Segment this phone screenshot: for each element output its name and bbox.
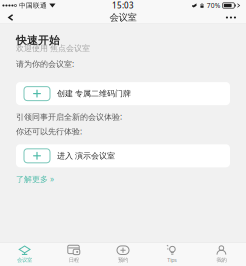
button[interactable]: 日程 (49, 243, 98, 266)
staticText: 你还可以先行体验: (16, 126, 82, 137)
staticText: 我的 (216, 257, 226, 263)
button[interactable]: Back (0, 11, 30, 24)
staticText: Tips (167, 256, 177, 264)
staticText: 中国联通 (19, 1, 47, 10)
staticText: 请为你的会议室: (16, 58, 74, 69)
staticText: 15:03 (112, 0, 134, 11)
staticText: 70% (207, 1, 221, 10)
staticText: 快速开始 (16, 34, 60, 47)
staticText: 进入 演示会议室 (57, 151, 115, 161)
staticText: 欢迎使用 焦点会议室 (16, 43, 90, 53)
button[interactable]: 预约 (98, 243, 148, 266)
staticText: 会议室 (17, 257, 32, 263)
button[interactable]: 创建 专属二维码门牌 (16, 82, 230, 105)
button[interactable]: 了解更多 » (0, 24, 38, 35)
staticText: 预约 (118, 257, 128, 263)
staticText: 日程 (69, 257, 79, 263)
button[interactable]: Tips (148, 243, 197, 266)
button[interactable]: More (212, 11, 246, 24)
button[interactable]: 进入 演示会议室 (16, 144, 230, 167)
staticText: 引领同事开启全新的会议体验: (16, 111, 122, 122)
button[interactable]: 我的 (197, 243, 246, 266)
staticText: 了解更多 » (16, 174, 54, 184)
staticText: 创建 专属二维码门牌 (57, 89, 131, 98)
button[interactable]: 会议室 (0, 243, 49, 266)
staticText: 会议室 (109, 12, 136, 23)
